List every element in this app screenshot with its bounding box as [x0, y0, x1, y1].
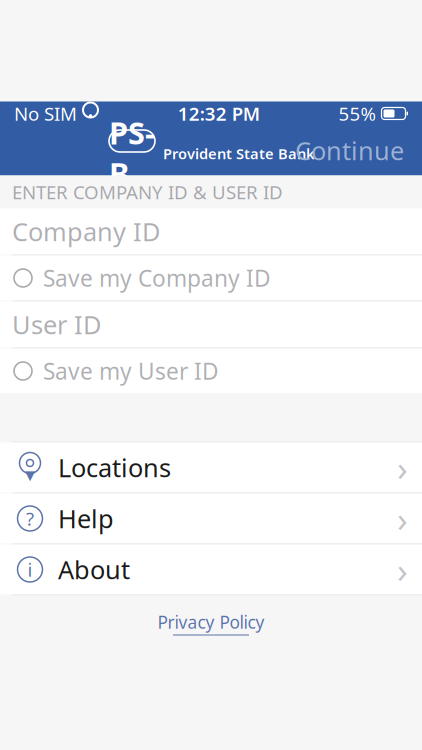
staticText: i: [27, 557, 32, 582]
staticText: Save my Company ID: [43, 263, 271, 293]
staticText: ›: [397, 444, 408, 490]
staticText: ›: [397, 546, 408, 592]
button[interactable]: ▾: [0, 442, 422, 492]
staticText: Privacy Policy: [157, 610, 264, 633]
staticText: Provident State Bank: [163, 144, 315, 163]
staticText: ENTER COMPANY ID & USER ID: [12, 180, 283, 204]
staticText: 12:32 PM: [178, 101, 260, 126]
staticText: Help: [58, 502, 114, 535]
button[interactable]: Save my User ID: [0, 348, 422, 393]
staticText: Company ID: [12, 215, 160, 248]
staticText: Continue: [295, 134, 404, 167]
staticText: PSB: [109, 112, 155, 194]
button[interactable]: i: [0, 544, 422, 594]
staticText: Save my User ID: [43, 356, 219, 386]
button[interactable]: Privacy Policy: [147, 605, 274, 640]
staticText: No SIM: [14, 101, 77, 126]
staticText: Locations: [58, 451, 171, 484]
button[interactable]: Save my Company ID: [0, 255, 422, 300]
staticText: About: [58, 553, 130, 586]
staticText: ?: [26, 506, 34, 531]
staticText: ›: [397, 495, 408, 541]
staticText: ▾: [25, 463, 35, 486]
staticText: 55%: [338, 101, 376, 126]
button[interactable]: Continue: [283, 128, 416, 173]
button[interactable]: ?: [0, 493, 422, 543]
staticText: User ID: [12, 308, 101, 341]
